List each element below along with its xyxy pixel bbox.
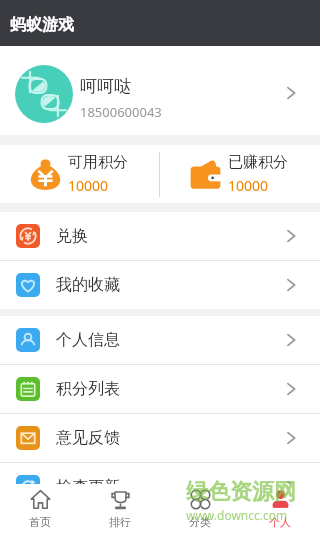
staticText: 个人 xyxy=(269,515,291,529)
staticText: 排行 xyxy=(109,515,131,529)
button[interactable]: 个人 xyxy=(240,484,320,533)
staticText: www.downcc.com xyxy=(186,507,288,523)
staticText: 意见反馈 xyxy=(56,428,284,448)
button[interactable]: 已赚积分 xyxy=(160,145,320,203)
staticText: 个人信息 xyxy=(56,330,284,350)
staticText: 已赚积分 xyxy=(228,153,288,172)
button[interactable]: 分类 xyxy=(160,484,240,533)
staticText: 10000 xyxy=(68,176,109,195)
button[interactable]: 可用积分 xyxy=(0,145,159,203)
staticText: 分类 xyxy=(189,515,211,529)
button[interactable]: 我的收藏 xyxy=(0,261,320,309)
button[interactable]: 排行 xyxy=(80,484,160,533)
button[interactable]: 意见反馈 xyxy=(0,414,320,462)
button[interactable]: 检查更新 xyxy=(0,463,320,484)
button[interactable]: 兑换 xyxy=(0,212,320,260)
button[interactable]: 首页 xyxy=(0,484,80,533)
staticText: 可用积分 xyxy=(68,153,128,172)
staticText: 蚂蚁游戏 xyxy=(10,15,74,35)
staticText: 10000 xyxy=(228,176,269,195)
button[interactable]: 呵呵哒 xyxy=(0,46,320,135)
staticText: 呵呵哒 xyxy=(80,76,131,97)
button[interactable]: 积分列表 xyxy=(0,365,320,413)
staticText: 我的收藏 xyxy=(56,275,284,295)
staticText: 18500600043 xyxy=(80,103,162,121)
staticText: 兑换 xyxy=(56,226,284,246)
button[interactable]: 个人信息 xyxy=(0,316,320,364)
staticText: 首页 xyxy=(29,515,51,529)
staticText: 绿色资源网 xyxy=(186,478,296,506)
staticText: 积分列表 xyxy=(56,379,284,399)
staticText: 检查更新 xyxy=(56,477,284,484)
